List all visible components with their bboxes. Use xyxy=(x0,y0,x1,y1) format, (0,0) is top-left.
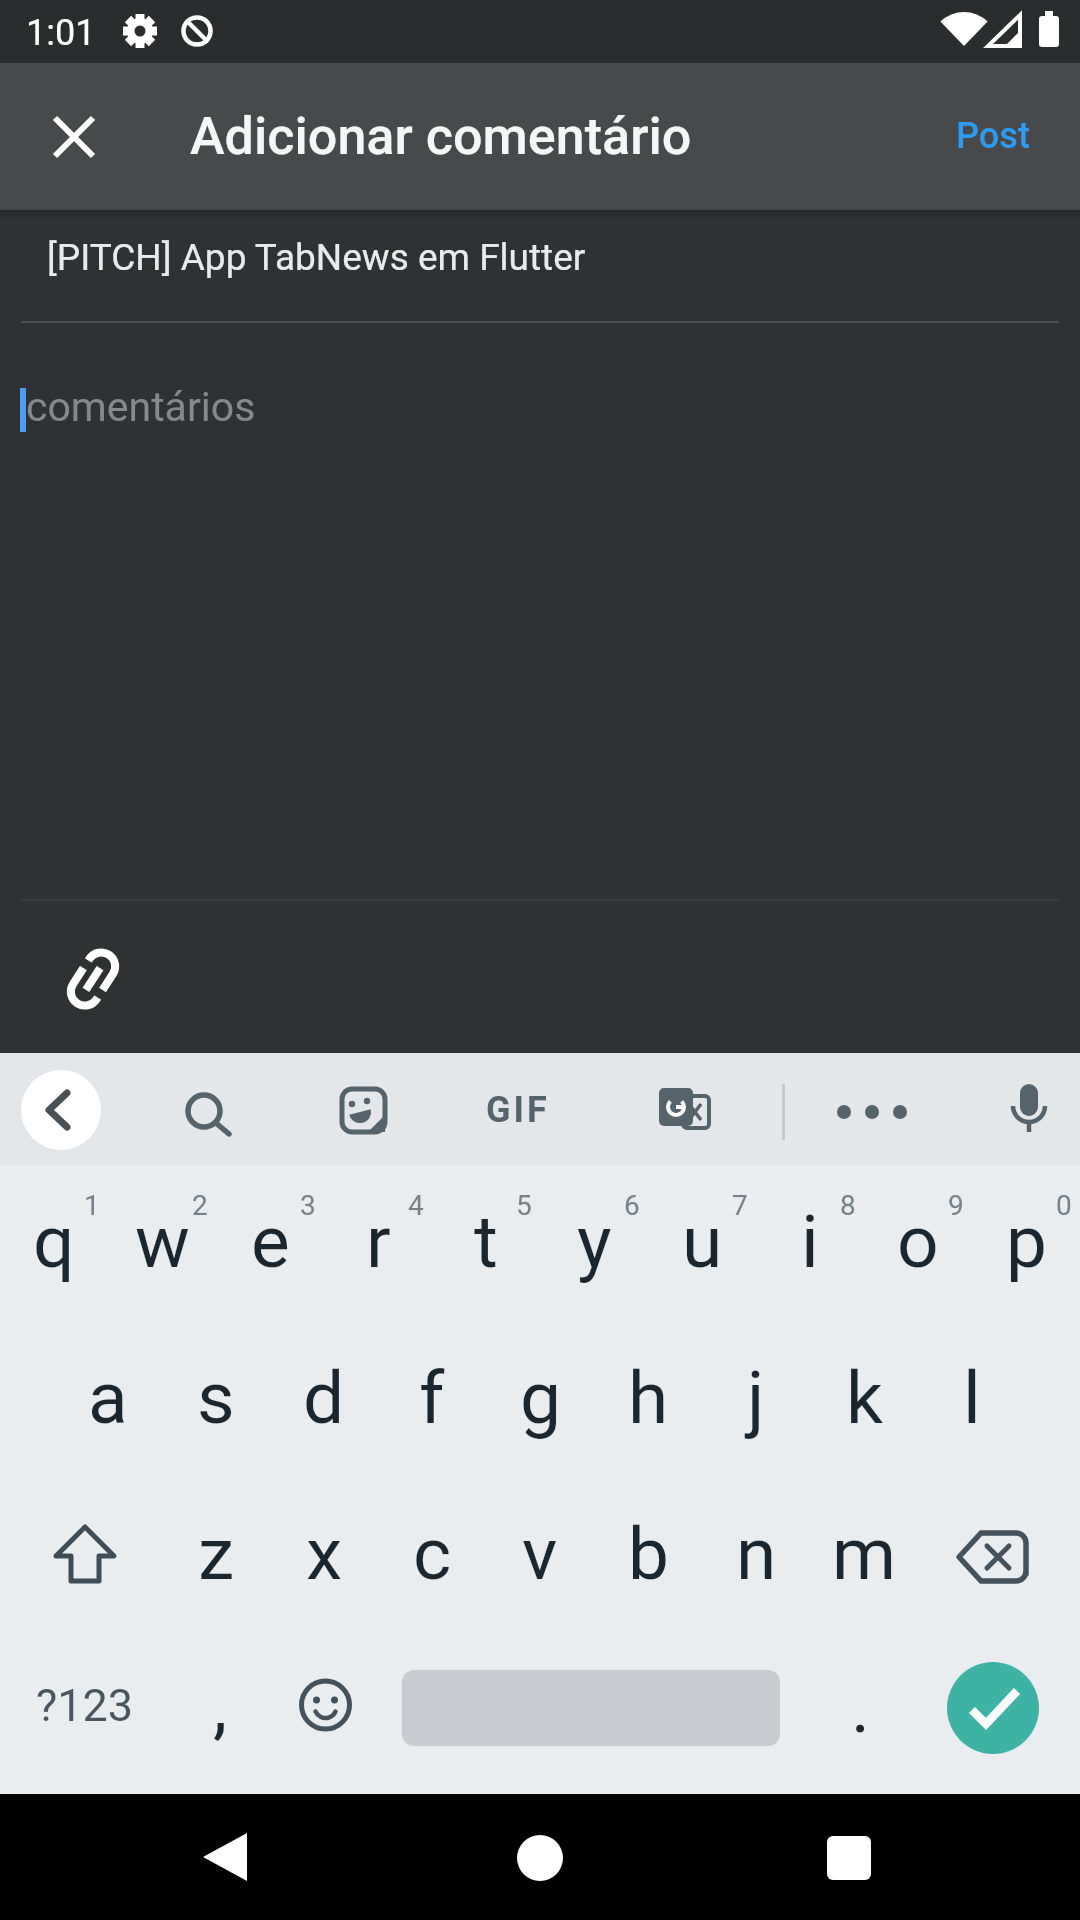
staticText: 1 xyxy=(84,1189,100,1222)
staticText: comentários xyxy=(26,383,256,431)
button[interactable] xyxy=(643,1072,723,1152)
button[interactable]: w xyxy=(109,1162,215,1322)
button[interactable] xyxy=(58,944,128,1014)
button[interactable]: y xyxy=(541,1162,647,1322)
button[interactable]: GIF xyxy=(458,1070,578,1150)
staticText: w xyxy=(135,1199,190,1285)
button[interactable]: z xyxy=(163,1474,269,1634)
staticText: g xyxy=(520,1355,561,1441)
staticText: 6 xyxy=(624,1189,640,1222)
staticText: . xyxy=(851,1665,870,1749)
staticText: c xyxy=(413,1511,452,1597)
button[interactable]: v xyxy=(487,1474,593,1634)
staticText: s xyxy=(197,1355,235,1441)
button[interactable] xyxy=(789,1797,909,1917)
button[interactable] xyxy=(166,1070,246,1150)
button[interactable] xyxy=(325,1070,405,1150)
button[interactable]: d xyxy=(271,1318,377,1478)
button[interactable]: a xyxy=(55,1318,161,1478)
button[interactable]: x xyxy=(271,1474,377,1634)
staticText: Adicionar comentário xyxy=(190,106,692,167)
staticText: v xyxy=(522,1511,558,1597)
button[interactable]: Post xyxy=(925,96,1060,176)
staticText: 3 xyxy=(300,1189,316,1222)
staticText: Post xyxy=(956,115,1030,157)
button[interactable]: h xyxy=(595,1318,701,1478)
staticText: t xyxy=(474,1199,498,1285)
staticText: 2 xyxy=(192,1189,208,1222)
button[interactable]: u xyxy=(649,1162,755,1322)
staticText: [PITCH] App TabNews em Flutter xyxy=(47,236,586,279)
button[interactable]: f xyxy=(379,1318,485,1478)
staticText: 5 xyxy=(516,1189,532,1222)
staticText: h xyxy=(628,1355,669,1441)
staticText: x xyxy=(306,1511,343,1597)
button[interactable]: t xyxy=(433,1162,539,1322)
button[interactable]: g xyxy=(487,1318,593,1478)
staticText: f xyxy=(419,1355,445,1441)
button[interactable]: e xyxy=(217,1162,323,1322)
staticText: 4 xyxy=(408,1189,424,1222)
button[interactable] xyxy=(480,1797,600,1917)
button[interactable]: n xyxy=(703,1474,809,1634)
staticText: i xyxy=(801,1199,819,1285)
staticText: r xyxy=(366,1199,391,1285)
button[interactable] xyxy=(21,1070,101,1150)
button[interactable]: l xyxy=(919,1318,1025,1478)
staticText: j xyxy=(747,1355,765,1441)
staticText: 7 xyxy=(732,1189,748,1222)
staticText: 1:01 xyxy=(26,12,96,54)
staticText: , xyxy=(213,1664,228,1748)
button[interactable]: m xyxy=(811,1474,917,1634)
button[interactable]: i xyxy=(757,1162,863,1322)
button[interactable]: b xyxy=(595,1474,701,1634)
button[interactable] xyxy=(934,1496,1054,1616)
button[interactable] xyxy=(26,1496,146,1616)
button[interactable] xyxy=(20,340,1060,900)
button[interactable] xyxy=(265,1645,385,1765)
button[interactable]: s xyxy=(163,1318,269,1478)
staticText: n xyxy=(736,1511,777,1597)
button[interactable]: , xyxy=(175,1636,265,1776)
staticText: o xyxy=(897,1199,939,1285)
button[interactable] xyxy=(947,1662,1039,1754)
staticText: 8 xyxy=(840,1189,856,1222)
button[interactable]: q xyxy=(1,1162,107,1322)
staticText: e xyxy=(251,1199,290,1285)
button[interactable] xyxy=(165,1797,285,1917)
button[interactable]: r xyxy=(325,1162,431,1322)
staticText: p xyxy=(1006,1199,1047,1285)
button[interactable]: . xyxy=(815,1637,905,1777)
staticText: k xyxy=(846,1355,883,1441)
staticText: q xyxy=(33,1199,75,1285)
staticText: u xyxy=(682,1199,723,1285)
staticText: 9 xyxy=(948,1189,964,1222)
staticText: b xyxy=(628,1511,669,1597)
button[interactable] xyxy=(40,103,108,171)
staticText: 0 xyxy=(1056,1189,1072,1222)
button[interactable]: k xyxy=(811,1318,917,1478)
staticText: d xyxy=(303,1355,345,1441)
button[interactable]: p xyxy=(973,1162,1079,1322)
button[interactable]: c xyxy=(379,1474,485,1634)
staticText: GIF xyxy=(486,1089,550,1131)
staticText: z xyxy=(198,1511,235,1597)
button[interactable]: o xyxy=(865,1162,971,1322)
button[interactable] xyxy=(832,1072,912,1152)
staticText: a xyxy=(88,1355,128,1441)
staticText: m xyxy=(832,1511,897,1597)
button[interactable] xyxy=(989,1070,1069,1150)
button[interactable]: j xyxy=(703,1318,809,1478)
staticText: ?123 xyxy=(36,1679,134,1732)
staticText: l xyxy=(963,1355,981,1441)
button[interactable]: ?123 xyxy=(5,1645,165,1765)
staticText: y xyxy=(577,1199,612,1285)
button[interactable]: [PITCH] App TabNews em Flutter xyxy=(21,221,1059,293)
